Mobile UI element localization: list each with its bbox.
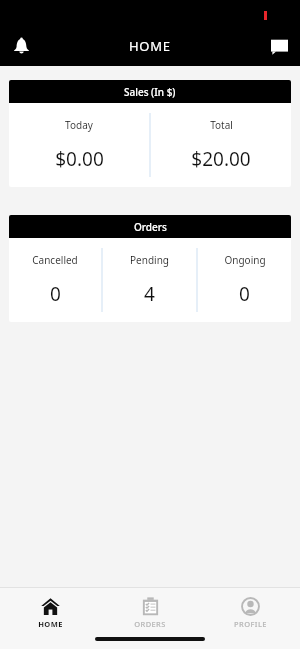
staticText: HOME: [38, 619, 63, 629]
staticText: HOME: [129, 37, 171, 55]
button[interactable]: Orders: [9, 215, 291, 322]
staticText: Ongoing: [224, 253, 266, 267]
staticText: $0.00: [55, 146, 104, 172]
staticText: 4: [144, 281, 155, 307]
button[interactable]: Sales (In $): [9, 80, 291, 187]
staticText: Cancelled: [32, 253, 78, 267]
staticText: 0: [239, 281, 250, 307]
staticText: $20.00: [191, 146, 251, 172]
staticText: ORDERS: [134, 619, 166, 629]
staticText: PROFILE: [234, 619, 267, 629]
button[interactable]: Messages: [258, 25, 300, 67]
staticText: Orders: [134, 220, 167, 234]
button[interactable]: ORDERS: [100, 588, 200, 629]
staticText: Pending: [130, 253, 169, 267]
button[interactable]: Notifications: [0, 25, 42, 67]
staticText: 0: [50, 281, 61, 307]
button[interactable]: PROFILE: [200, 588, 300, 629]
staticText: Total: [210, 118, 233, 132]
staticText: Today: [65, 118, 93, 132]
button[interactable]: HOME: [0, 588, 100, 629]
staticText: Sales (In $): [124, 85, 176, 99]
